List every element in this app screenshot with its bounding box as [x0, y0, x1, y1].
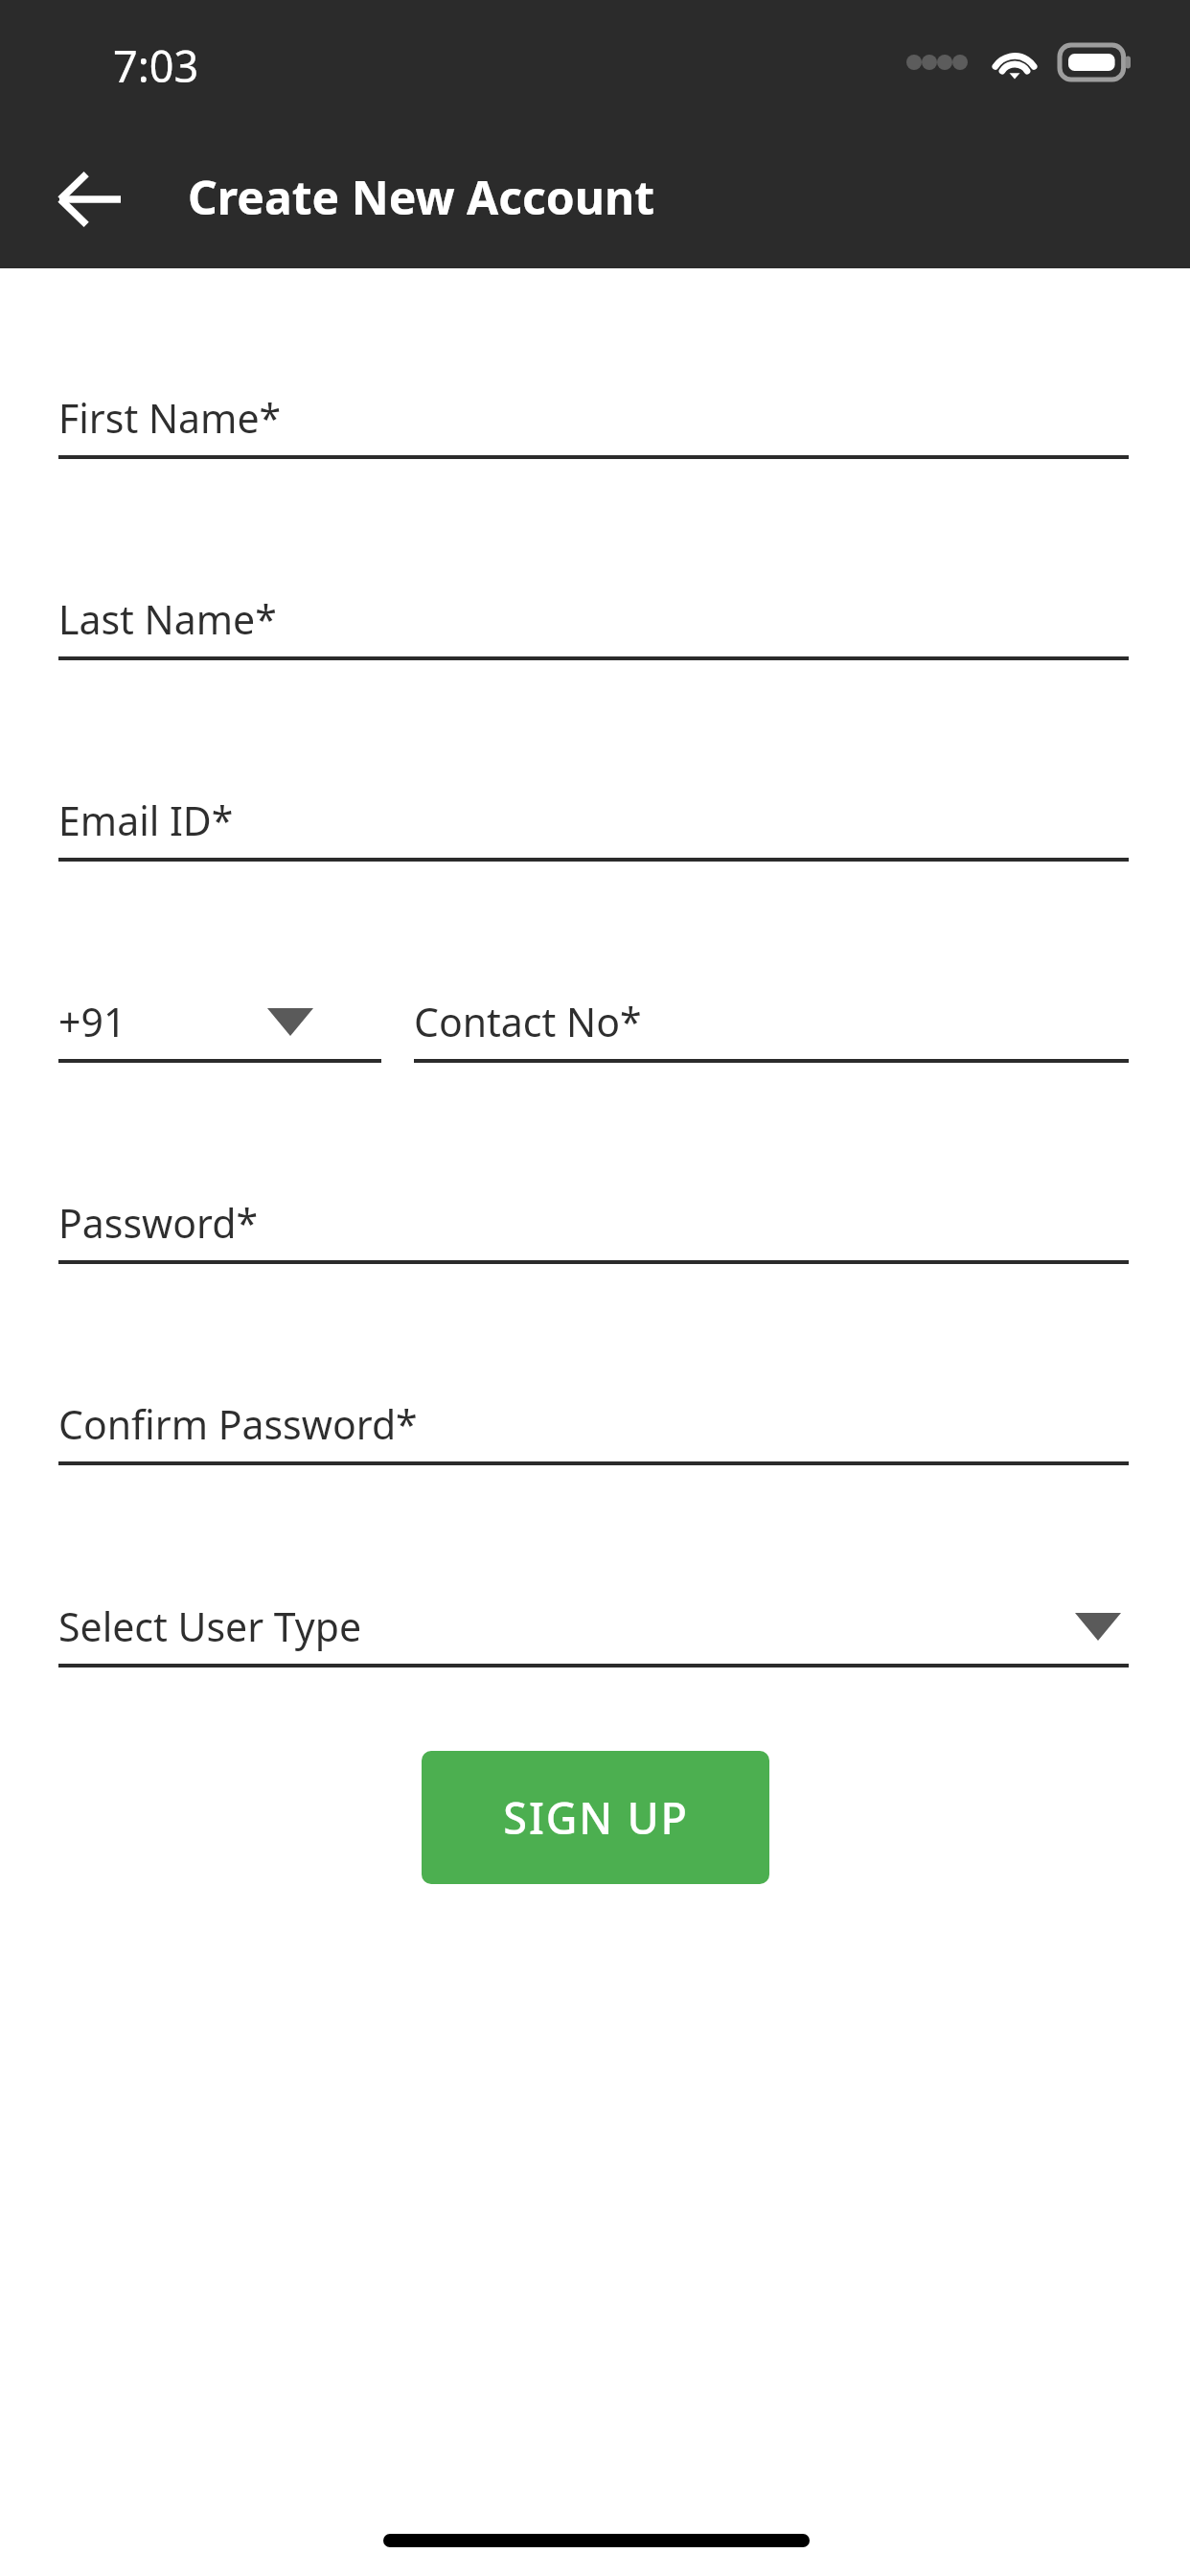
button[interactable]: Select User Type — [58, 1560, 1129, 1666]
staticText: Password* — [58, 1196, 259, 1250]
staticText: SIGN UP — [503, 1788, 689, 1847]
staticText: Contact No* — [414, 995, 642, 1048]
staticText: 7:03 — [113, 36, 199, 95]
button[interactable]: +91 — [58, 955, 381, 1061]
button[interactable]: Back — [40, 149, 140, 249]
button[interactable]: Password* — [58, 1157, 1129, 1262]
button[interactable]: Last Name* — [58, 553, 1129, 658]
button[interactable]: First Name* — [58, 352, 1129, 457]
staticText: Create New Account — [188, 166, 654, 228]
staticText: Select User Type — [58, 1599, 362, 1653]
staticText: Email ID* — [58, 793, 234, 847]
button[interactable]: Email ID* — [58, 754, 1129, 860]
staticText: Last Name* — [58, 592, 277, 646]
staticText: +91 — [58, 995, 126, 1048]
button[interactable]: Confirm Password* — [58, 1358, 1129, 1463]
button[interactable]: Contact No* — [414, 955, 1129, 1061]
staticText: Confirm Password* — [58, 1397, 418, 1451]
staticText: First Name* — [58, 391, 282, 445]
button[interactable]: SIGN UP — [422, 1751, 769, 1884]
